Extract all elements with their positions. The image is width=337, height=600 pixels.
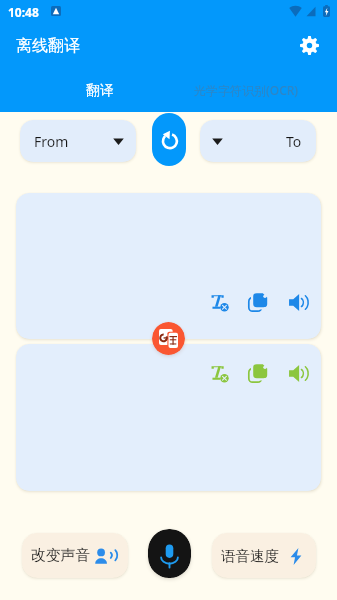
button[interactable]: Speak <box>285 289 311 315</box>
button[interactable]: 光学字符识别(OCR) <box>168 68 337 112</box>
button[interactable]: 改变声音 <box>22 533 128 578</box>
staticText: 光学字符识别(OCR) <box>194 82 299 98</box>
staticText: To <box>286 132 302 151</box>
button[interactable]: Clear text <box>16 193 321 339</box>
staticText: 离线翻译 <box>16 36 80 56</box>
staticText: 语音速度 <box>221 547 279 565</box>
button[interactable]: Clear text <box>206 289 232 315</box>
button[interactable]: From <box>20 120 136 162</box>
button[interactable]: 翻译 <box>0 68 168 112</box>
button[interactable]: To <box>200 120 316 162</box>
button[interactable]: Settings <box>294 30 324 60</box>
button[interactable]: Clear text <box>206 360 232 386</box>
staticText: 翻译 <box>86 82 114 100</box>
button[interactable]: Microphone <box>148 529 191 578</box>
staticText: From <box>34 132 69 151</box>
button[interactable]: 语音速度 <box>212 533 316 578</box>
button[interactable]: Copy <box>245 289 271 315</box>
button[interactable]: Clear text <box>16 344 321 491</box>
staticText: 改变声音 <box>31 546 91 565</box>
button[interactable]: Speak <box>285 360 311 386</box>
button[interactable]: Translate <box>152 322 185 355</box>
button[interactable]: Copy <box>245 360 271 386</box>
staticText: 10:48 <box>8 4 39 20</box>
button[interactable]: Swap languages <box>152 113 186 166</box>
